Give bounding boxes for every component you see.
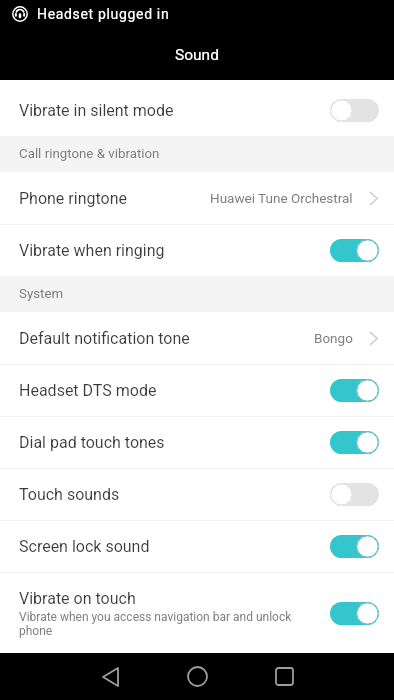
staticText: Phone ringtone xyxy=(19,189,210,208)
button[interactable]: Headset DTS mode xyxy=(0,365,394,416)
staticText: Headset plugged in xyxy=(37,6,170,22)
staticText: Headset DTS mode xyxy=(19,381,330,400)
button[interactable]: Off xyxy=(330,99,379,122)
button[interactable]: Default notification tone xyxy=(0,312,394,364)
staticText: Sound xyxy=(175,46,219,64)
button[interactable]: On xyxy=(330,379,379,402)
staticText: Default notification tone xyxy=(19,329,314,348)
button[interactable]: Dial pad touch tones xyxy=(0,417,394,468)
button[interactable]: On xyxy=(330,239,379,262)
button[interactable]: Recents xyxy=(261,653,308,700)
staticText: Vibrate on touch xyxy=(19,589,136,608)
button[interactable]: On xyxy=(330,431,379,454)
button[interactable]: Off xyxy=(330,483,379,506)
staticText: Bongo xyxy=(314,330,353,346)
staticText: Vibrate in silent mode xyxy=(19,101,330,120)
button[interactable]: Vibrate on touch xyxy=(0,573,394,653)
button[interactable]: Touch sounds xyxy=(0,469,394,520)
button[interactable]: On xyxy=(330,602,379,625)
button[interactable]: Back xyxy=(87,653,134,700)
button[interactable]: Vibrate in silent mode xyxy=(0,80,394,136)
button[interactable]: Home xyxy=(174,653,221,700)
staticText: Screen lock sound xyxy=(19,537,330,556)
staticText: Dial pad touch tones xyxy=(19,433,330,452)
staticText: Call ringtone & vibration xyxy=(19,146,160,162)
button[interactable]: Screen lock sound xyxy=(0,521,394,572)
button[interactable]: Phone ringtone xyxy=(0,172,394,224)
button[interactable]: On xyxy=(330,535,379,558)
staticText: Huawei Tune Orchestral xyxy=(210,190,353,206)
staticText: Touch sounds xyxy=(19,485,330,504)
staticText: System xyxy=(19,286,64,302)
staticText: Vibrate when you access navigation bar a… xyxy=(19,610,314,638)
button[interactable]: Vibrate when ringing xyxy=(0,225,394,276)
staticText: Vibrate when ringing xyxy=(19,241,330,260)
